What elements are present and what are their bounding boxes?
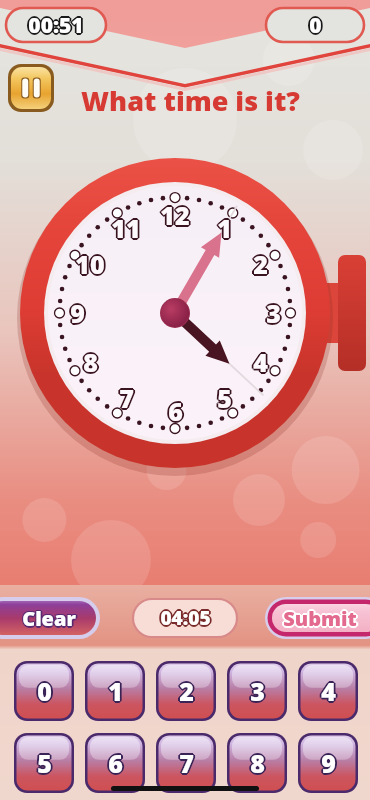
staticText: 1 — [108, 674, 123, 708]
staticText: 6 — [108, 748, 123, 782]
button[interactable]: 6 — [85, 733, 145, 793]
staticText: 3 — [251, 673, 266, 707]
staticText: 11 — [109, 211, 139, 245]
staticText: 2 — [181, 674, 196, 708]
staticText: 0 — [308, 10, 321, 39]
staticText: 6 — [168, 392, 183, 426]
staticText: 0 — [36, 673, 51, 707]
staticText: 0 — [310, 12, 323, 41]
staticText: 5 — [36, 745, 51, 779]
staticText: 6 — [109, 745, 124, 779]
staticText: 5 — [36, 747, 51, 781]
button[interactable]: Clear — [0, 597, 100, 639]
staticText: 3 — [268, 296, 283, 330]
staticText: 3 — [249, 675, 264, 709]
staticText: 4 — [253, 345, 268, 379]
staticText: 1 — [110, 674, 125, 708]
staticText: 5 — [215, 381, 230, 415]
staticText: 4 — [252, 346, 267, 380]
staticText: 2 — [255, 247, 270, 281]
staticText: 7 — [120, 382, 135, 416]
staticText: 5 — [219, 381, 234, 415]
staticText: 3 — [266, 296, 281, 330]
staticText: 0 — [36, 675, 51, 709]
button[interactable]: 4 — [298, 661, 358, 721]
staticText: 0 — [307, 11, 320, 40]
staticText: 8 — [83, 343, 98, 377]
staticText: Clear — [22, 604, 76, 631]
staticText: What time is it? — [81, 82, 300, 119]
staticText: 2 — [253, 245, 268, 279]
staticText: 2 — [254, 246, 269, 280]
staticText: 7 — [180, 747, 195, 781]
staticText: 7 — [120, 380, 135, 414]
staticText: 1 — [217, 211, 232, 245]
button[interactable]: 2 — [156, 661, 216, 721]
staticText: 8 — [250, 744, 265, 778]
staticText: 2 — [179, 676, 194, 710]
staticText: Submit — [284, 604, 358, 631]
staticText: 6 — [167, 393, 182, 427]
staticText: 3 — [249, 673, 264, 707]
staticText: 00:51 — [29, 12, 85, 41]
staticText: 10 — [75, 245, 105, 279]
staticText: 4 — [254, 346, 269, 380]
staticText: Clear — [22, 605, 76, 632]
staticText: 5 — [38, 745, 53, 779]
staticText: 6 — [107, 747, 122, 781]
staticText: 04:05 — [159, 604, 210, 630]
staticText: 8 — [251, 745, 266, 779]
staticText: Submit — [284, 606, 358, 633]
staticText: 2 — [254, 248, 269, 282]
staticText: 2 — [178, 673, 193, 707]
button[interactable]: 04:05 — [133, 599, 237, 637]
staticText: 3 — [251, 675, 266, 709]
button[interactable]: 7 — [156, 733, 216, 793]
staticText: 10 — [77, 247, 107, 281]
staticText: 6 — [167, 395, 182, 429]
staticText: 5 — [218, 380, 233, 414]
button[interactable]: 9 — [298, 733, 358, 793]
staticText: 6 — [170, 394, 185, 428]
staticText: 7 — [179, 748, 194, 782]
staticText: 2 — [252, 248, 267, 282]
staticText: 5 — [216, 380, 231, 414]
button[interactable]: Pause — [8, 64, 54, 112]
staticText: 4 — [254, 344, 269, 378]
staticText: 2 — [253, 249, 268, 283]
staticText: Clear — [21, 604, 75, 631]
staticText: 3 — [265, 295, 280, 329]
staticText: 5 — [35, 746, 50, 780]
staticText: 4 — [321, 674, 336, 708]
staticText: 5 — [217, 383, 232, 417]
staticText: 9 — [69, 297, 84, 331]
staticText: 9 — [70, 298, 85, 332]
button[interactable]: 00:51 — [6, 8, 106, 42]
staticText: 0 — [35, 674, 50, 708]
staticText: 2 — [177, 674, 192, 708]
staticText: 9 — [68, 296, 83, 330]
staticText: 10 — [76, 246, 106, 280]
staticText: 9 — [70, 296, 85, 330]
staticText: 00:51 — [28, 11, 84, 40]
button[interactable]: Submit — [265, 597, 370, 639]
button[interactable]: 3 — [227, 661, 287, 721]
staticText: 0 — [308, 12, 321, 41]
staticText: 00:51 — [27, 12, 83, 41]
staticText: Submit — [283, 603, 357, 630]
staticText: 3 — [264, 296, 279, 330]
staticText: 12 — [159, 199, 189, 233]
button[interactable]: 0 — [266, 8, 364, 42]
staticText: 5 — [37, 746, 52, 780]
staticText: Clear — [23, 606, 77, 633]
button[interactable]: 8 — [227, 733, 287, 793]
staticText: 04:05 — [160, 603, 211, 629]
staticText: 04:05 — [158, 605, 209, 631]
button[interactable]: 5 — [14, 733, 74, 793]
staticText: 6 — [108, 746, 123, 780]
staticText: 11 — [111, 213, 141, 247]
button[interactable]: 1 — [85, 661, 145, 721]
button[interactable]: 0 — [14, 661, 74, 721]
staticText: 1 — [215, 211, 230, 245]
staticText: 0 — [37, 674, 52, 708]
